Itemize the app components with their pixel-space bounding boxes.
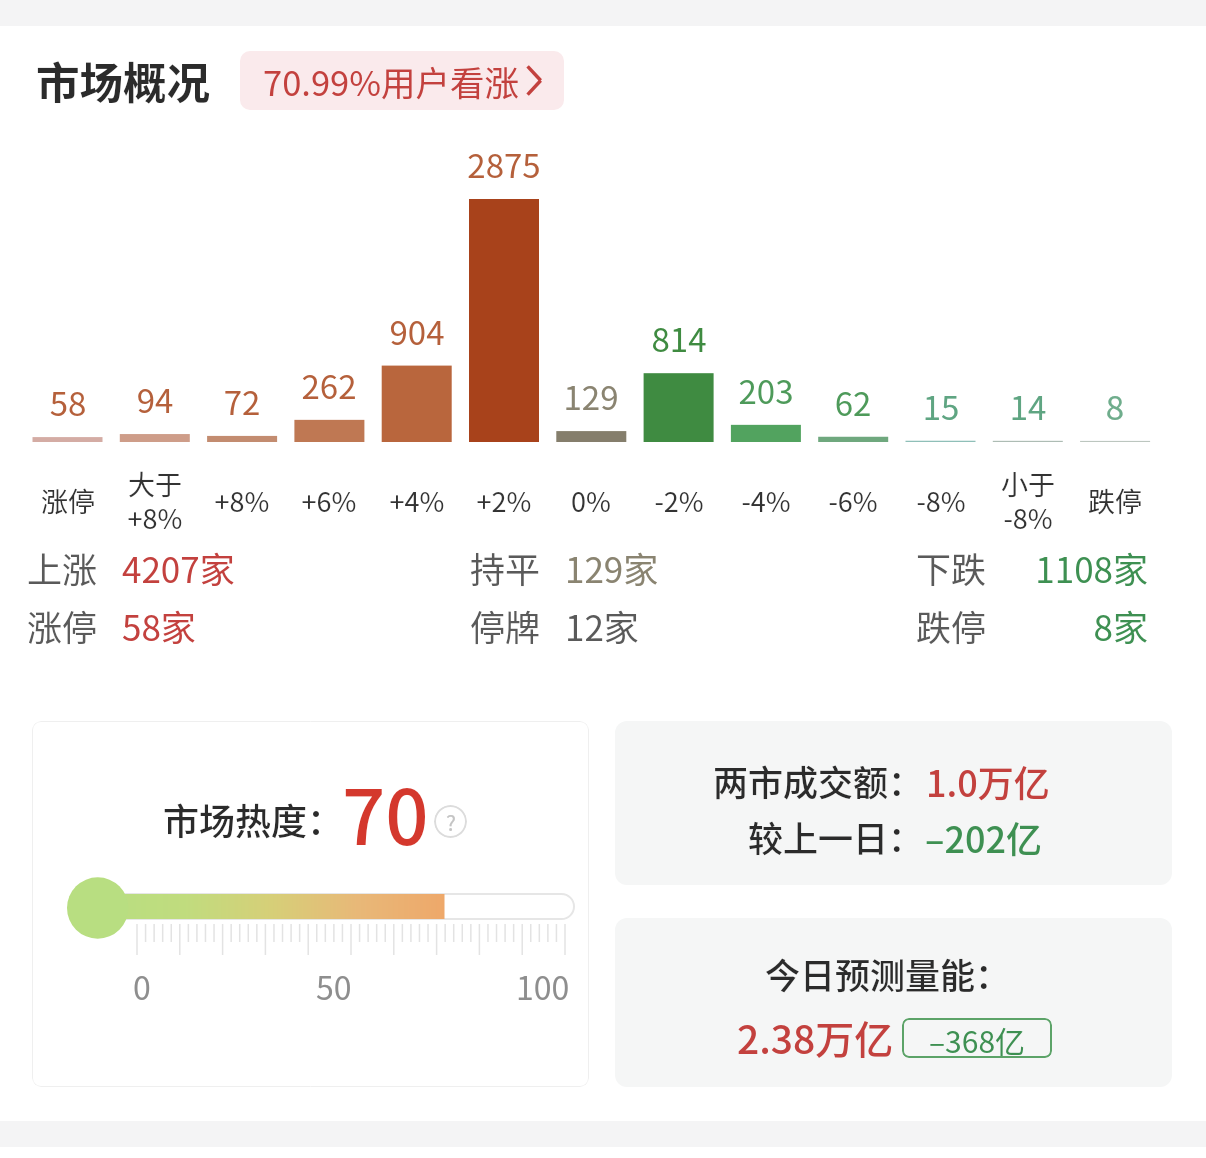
button[interactable]: 市场热度： bbox=[32, 721, 589, 1087]
staticText: 8 bbox=[1065, 382, 1165, 430]
staticText: 58家 bbox=[122, 600, 196, 651]
staticText: -2% bbox=[636, 481, 722, 520]
staticText: 8家 bbox=[948, 600, 1148, 651]
staticText: 跌停 bbox=[1072, 481, 1158, 520]
staticText: +6% bbox=[286, 481, 372, 520]
staticText: 市场概况 bbox=[36, 49, 210, 112]
staticText: 62 bbox=[803, 378, 903, 426]
staticText: 小于 -8% bbox=[985, 464, 1071, 537]
staticText: 涨停 bbox=[27, 600, 98, 651]
staticText: –202亿 bbox=[925, 811, 1043, 863]
staticText: 两市成交额： bbox=[713, 755, 924, 806]
button[interactable]: 70.99%用户看涨 bbox=[240, 51, 564, 110]
staticText: 下跌 bbox=[916, 542, 987, 593]
staticText: 14 bbox=[978, 382, 1078, 430]
button[interactable]: 两市成交额： bbox=[615, 721, 1172, 885]
staticText: 100 bbox=[516, 963, 570, 1009]
staticText: 大于 +8% bbox=[112, 464, 198, 537]
staticText: 1.0万亿 bbox=[926, 755, 1050, 807]
staticText: +4% bbox=[374, 481, 460, 520]
staticText: 市场热度： bbox=[163, 793, 344, 845]
staticText: +2% bbox=[461, 481, 547, 520]
staticText: 12家 bbox=[565, 600, 639, 651]
staticText: ? bbox=[446, 807, 456, 837]
staticText: -8% bbox=[898, 481, 984, 520]
staticText: +8% bbox=[199, 481, 285, 520]
staticText: 0 bbox=[133, 963, 151, 1009]
staticText: 1108家 bbox=[948, 542, 1148, 593]
staticText: 4207家 bbox=[122, 542, 235, 593]
button[interactable]: Help bbox=[434, 805, 467, 838]
staticText: 129 bbox=[541, 372, 641, 420]
staticText: 70 bbox=[342, 757, 429, 867]
staticText: 上涨 bbox=[27, 542, 98, 593]
staticText: 今日预测量能： bbox=[765, 948, 1011, 999]
staticText: 涨停 bbox=[25, 481, 111, 520]
staticText: 0% bbox=[548, 481, 634, 520]
staticText: 2.38万亿 bbox=[737, 1009, 894, 1065]
staticText: 129家 bbox=[565, 542, 659, 593]
staticText: 203 bbox=[716, 366, 816, 414]
staticText: 70.99%用户看涨 bbox=[263, 56, 519, 106]
staticText: 跌停 bbox=[916, 600, 987, 651]
staticText: 50 bbox=[316, 963, 352, 1009]
staticText: 904 bbox=[367, 307, 467, 355]
staticText: 814 bbox=[629, 314, 729, 362]
staticText: 58 bbox=[18, 378, 118, 426]
staticText: 2875 bbox=[454, 140, 554, 188]
staticText: 持平 bbox=[470, 542, 541, 593]
staticText: 停牌 bbox=[470, 600, 541, 651]
staticText: -4% bbox=[723, 481, 809, 520]
button[interactable]: 今日预测量能： bbox=[615, 918, 1172, 1087]
staticText: 94 bbox=[105, 375, 205, 423]
staticText: 262 bbox=[279, 361, 379, 409]
staticText: –368亿 bbox=[929, 1018, 1026, 1058]
staticText: 72 bbox=[192, 377, 292, 425]
staticText: -6% bbox=[810, 481, 896, 520]
staticText: 15 bbox=[891, 382, 991, 430]
staticText: 较上一日： bbox=[748, 811, 924, 862]
